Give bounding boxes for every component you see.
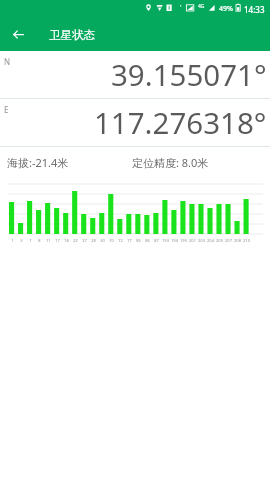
staticText: 208	[234, 238, 241, 243]
staticText: 30	[100, 238, 105, 243]
staticText: 207	[225, 238, 232, 243]
staticText: 28	[91, 238, 96, 243]
staticText: 11	[46, 238, 51, 243]
button[interactable]: Back	[0, 16, 36, 51]
staticText: 201	[189, 238, 196, 243]
button[interactable]: E	[0, 99, 270, 146]
staticText: 193	[162, 238, 169, 243]
staticText: 39.155071°	[111, 54, 267, 94]
staticText: 3	[20, 238, 23, 243]
staticText: 87	[154, 238, 159, 243]
staticText: N	[4, 56, 11, 67]
staticText: 22	[73, 238, 78, 243]
staticText: 17	[55, 238, 60, 243]
staticText: 海拔:-21.4米	[7, 155, 69, 170]
staticText: 8	[38, 238, 41, 243]
staticText: 210	[243, 238, 250, 243]
staticText: 卫星状态	[49, 28, 95, 42]
staticText: 117.276318°	[94, 102, 267, 142]
staticText: 194	[171, 238, 178, 243]
staticText: 27	[82, 238, 87, 243]
staticText: 14:33	[244, 4, 265, 15]
staticText: 49%	[219, 4, 233, 14]
staticText: 204	[207, 238, 214, 243]
staticText: E	[4, 104, 9, 115]
staticText: 205	[216, 238, 223, 243]
staticText: 195	[180, 238, 187, 243]
staticText: 77	[127, 238, 132, 243]
staticText: 18	[64, 238, 69, 243]
staticText: 4G	[198, 3, 205, 10]
staticText: 72	[118, 238, 123, 243]
staticText: 1	[11, 238, 14, 243]
staticText: 70	[109, 238, 114, 243]
staticText: 86	[145, 238, 150, 243]
staticText: 7	[29, 238, 32, 243]
staticText: 85	[136, 238, 141, 243]
staticText: 定位精度: 8.0米	[132, 155, 209, 170]
button[interactable]: N	[0, 51, 270, 98]
staticText: 203	[198, 238, 205, 243]
